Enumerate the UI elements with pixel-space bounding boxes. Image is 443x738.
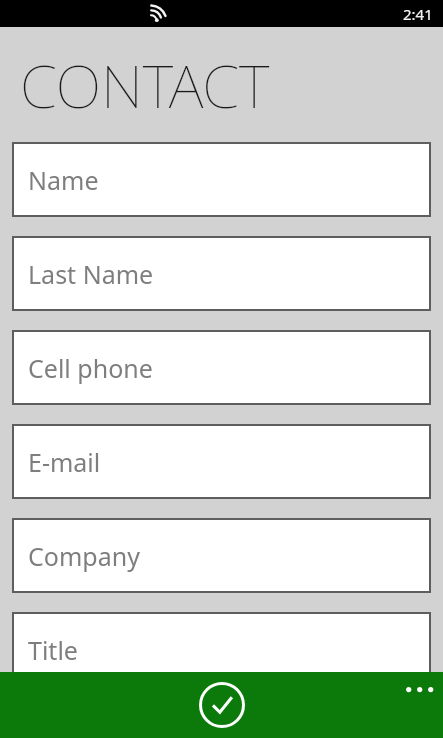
button[interactable]: More options	[401, 674, 437, 704]
button[interactable]: E-mail	[12, 424, 431, 499]
button[interactable]: Cell phone	[12, 330, 431, 405]
button[interactable]: Save contact	[199, 682, 245, 728]
button[interactable]: Address	[12, 706, 431, 738]
staticText: E-mail	[28, 445, 101, 479]
staticText: Company	[28, 539, 140, 573]
staticText: CONTACT	[20, 44, 270, 126]
staticText: Last Name	[28, 257, 154, 291]
staticText: Cell phone	[28, 351, 153, 385]
button[interactable]: Name	[12, 142, 431, 217]
button[interactable]: Last Name	[12, 236, 431, 311]
staticText: 2:41	[403, 4, 433, 24]
button[interactable]: Company	[12, 518, 431, 593]
button[interactable]: Title	[12, 612, 431, 687]
staticText: Title	[28, 633, 78, 667]
staticText: Name	[28, 163, 99, 197]
